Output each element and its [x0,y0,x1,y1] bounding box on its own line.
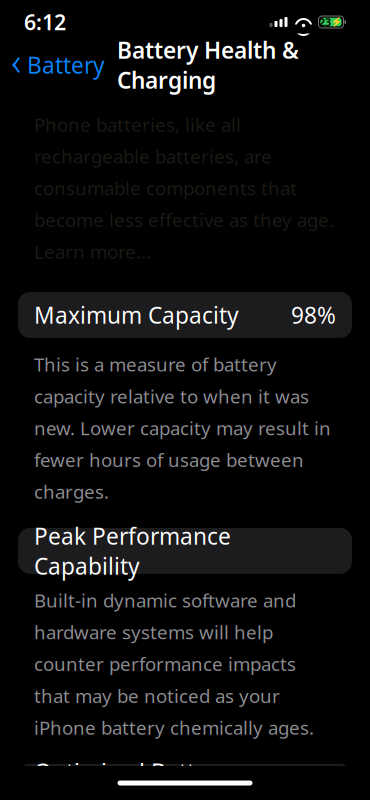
staticText: Maximum Capacity [34,300,239,330]
staticText: Battery Health & Charging [117,35,299,95]
button[interactable]: Battery [0,44,105,86]
staticText: 23 [319,15,331,29]
button[interactable]: Maximum Capacity [18,292,352,338]
staticText: 98% [291,300,336,330]
staticText: 6:12 [24,8,66,36]
staticText: Battery [27,50,105,80]
button[interactable]: Optimized Battery Charging [18,764,352,800]
staticText: Built-in dynamic software and hardware s… [34,588,314,740]
staticText: Peak Performance Capability [34,521,231,581]
staticText: Optimized Battery Charging [34,757,229,800]
button[interactable]: Peak Performance Capability [18,528,352,574]
staticText: Phone batteries, like all rechargeable b… [34,112,334,264]
staticText: ⚡ [331,17,343,27]
staticText: This is a measure of battery capacity re… [34,352,331,504]
